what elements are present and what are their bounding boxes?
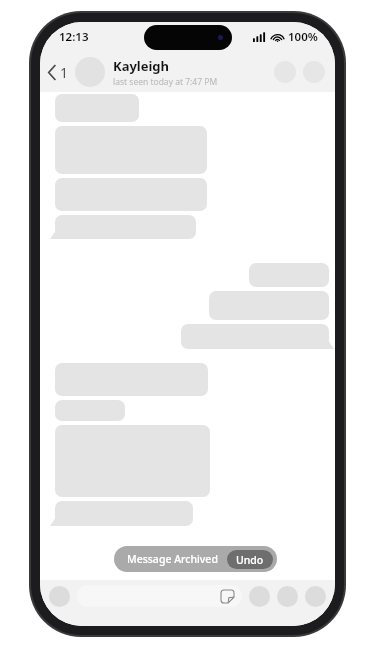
staticText: 12:13: [59, 29, 89, 45]
button[interactable]: Message bubble: [55, 400, 125, 421]
button[interactable]: Back: [40, 59, 71, 86]
staticText: Kayleigh: [113, 57, 170, 75]
staticText: Message Archived: [127, 552, 218, 566]
button[interactable]: Stickers: [77, 585, 242, 607]
button[interactable]: Stickers: [221, 590, 234, 603]
button[interactable]: Add attachment: [49, 586, 70, 607]
button[interactable]: Camera: [249, 586, 270, 607]
button[interactable]: Message Archived: [114, 546, 277, 572]
button[interactable]: Contact avatar: [75, 57, 105, 87]
button[interactable]: Kayleigh: [113, 57, 274, 88]
button[interactable]: Send: [305, 586, 326, 607]
staticText: Undo: [236, 553, 264, 567]
button[interactable]: More options: [303, 61, 325, 83]
staticText: 100%: [288, 29, 318, 45]
button[interactable]: Call: [274, 61, 296, 83]
button[interactable]: Microphone: [277, 586, 298, 607]
button[interactable]: Message bubble: [249, 263, 329, 287]
staticText: 1: [60, 63, 69, 82]
button[interactable]: Message bubble: [55, 94, 139, 122]
staticText: last seen today at 7:47 PM: [113, 76, 218, 88]
button[interactable]: Undo: [227, 550, 273, 569]
